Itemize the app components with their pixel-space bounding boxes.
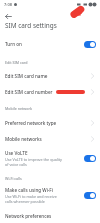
staticText: Use Wi-Fi to make and receive calls wher… [5, 194, 63, 204]
staticText: Make calls using Wi-Fi [5, 187, 54, 193]
staticText: Wi-Fi calls [5, 176, 22, 181]
staticText: Edit SIM card [5, 60, 28, 65]
button[interactable]: Network preferences [0, 209, 100, 222]
staticText: Mobile network [5, 106, 32, 111]
button[interactable]: Open [90, 73, 96, 79]
button[interactable]: Edit SIM card number [0, 85, 100, 98]
staticText: Mobile networks [5, 136, 42, 142]
button[interactable]: Back [3, 11, 14, 22]
staticText: Use VoLTE to improve the quality of voic… [5, 157, 63, 167]
button[interactable]: Use VoLTE [0, 148, 100, 168]
staticText: Network preferences [5, 213, 52, 219]
staticText: SIM card settings [5, 21, 57, 30]
other: Annotation arrow [70, 5, 86, 19]
button[interactable]: Preferred network type [0, 116, 100, 129]
button[interactable]: Open [90, 89, 96, 95]
staticText: Use VoLTE [5, 150, 28, 156]
button[interactable]: Toggle [84, 192, 96, 199]
button[interactable]: Turn on [0, 37, 100, 51]
button[interactable]: Open [90, 136, 96, 142]
staticText: Preferred network type [5, 120, 57, 126]
staticText: Turn on [5, 41, 22, 47]
button[interactable]: Mobile networks [0, 132, 100, 145]
staticText: Edit SIM card name [5, 73, 48, 79]
staticText: 7:08 [4, 2, 12, 7]
staticText: Edit SIM card number [5, 89, 53, 95]
button[interactable]: Make calls using Wi-Fi [0, 185, 100, 205]
button[interactable]: Toggle [84, 41, 96, 48]
button[interactable]: Toggle [84, 155, 96, 162]
button[interactable]: Open [90, 120, 96, 126]
button[interactable]: Edit SIM card name [0, 69, 100, 82]
